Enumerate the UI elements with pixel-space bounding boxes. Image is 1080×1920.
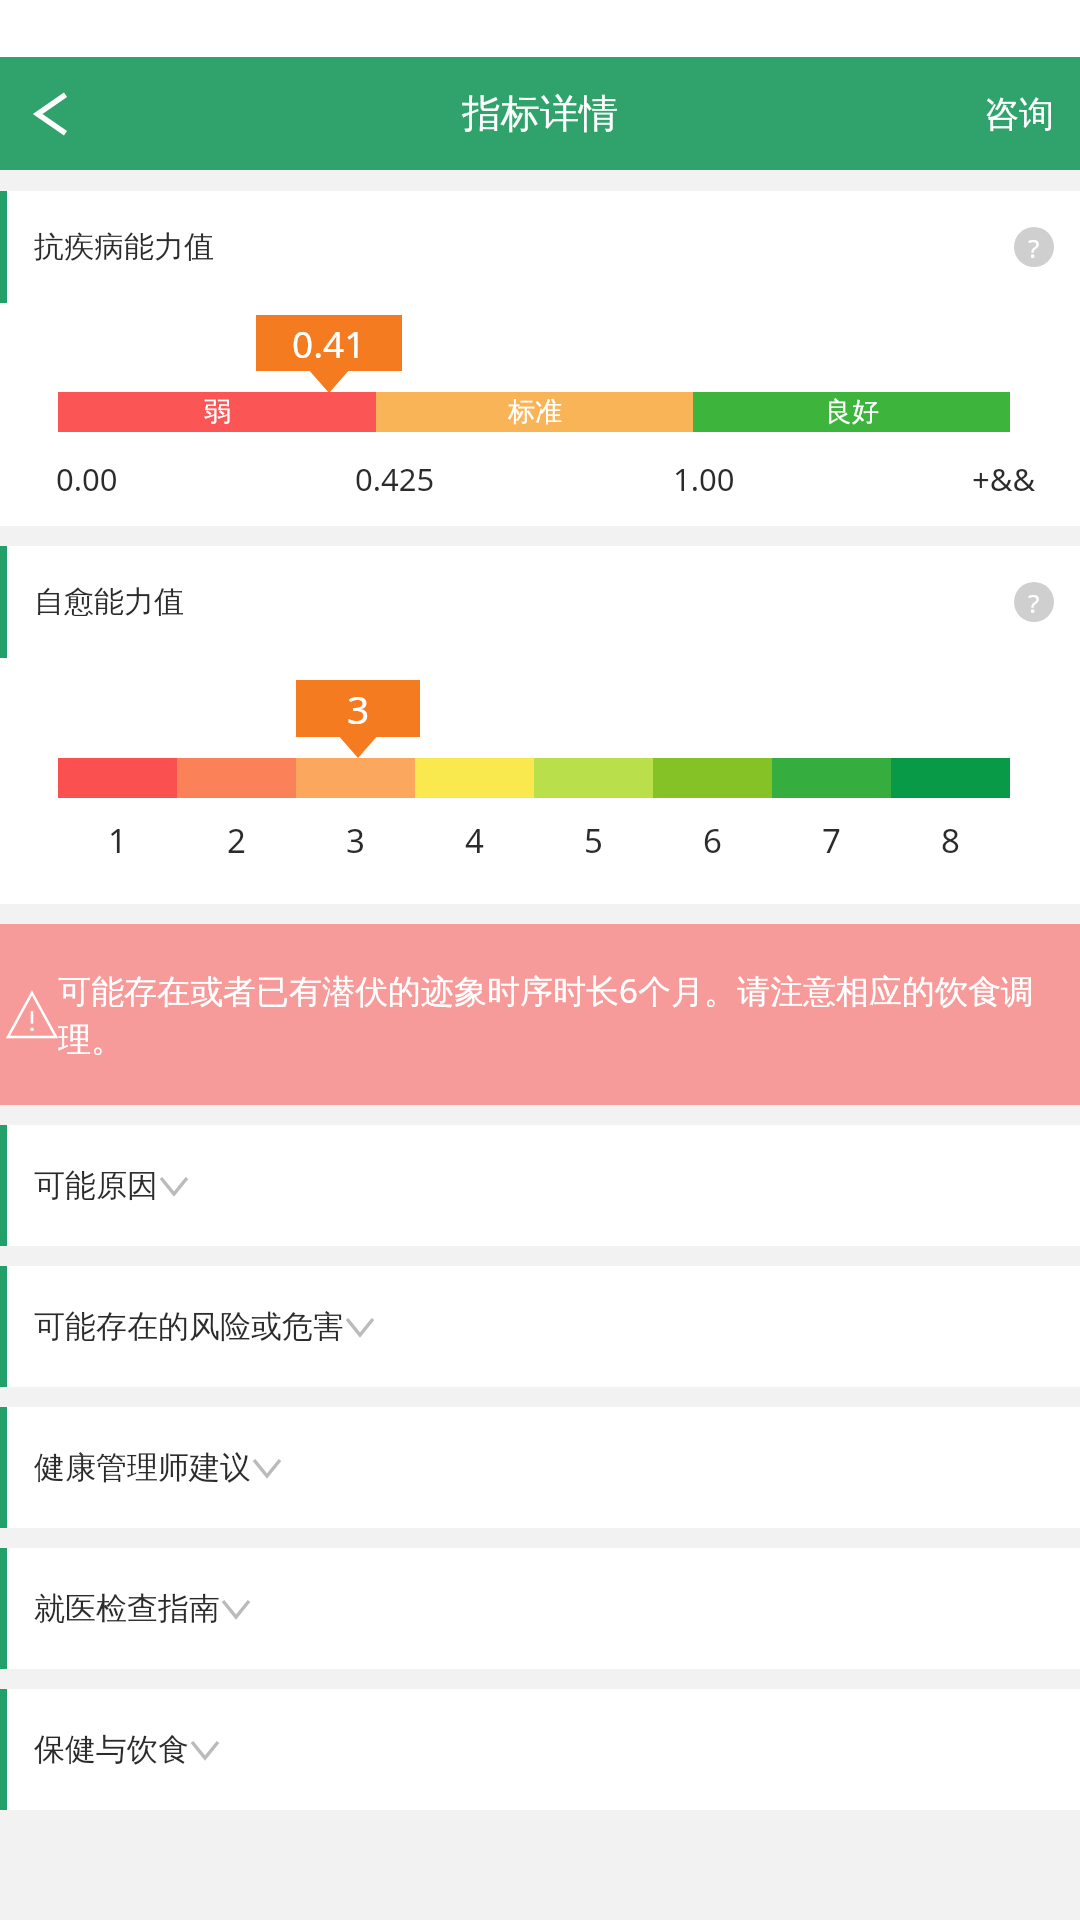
staticText: +&& xyxy=(972,458,1036,500)
staticText: 0.00 xyxy=(56,458,118,500)
button[interactable]: 可能原因 xyxy=(0,1125,1080,1246)
staticText: 咨询 xyxy=(984,92,1054,136)
staticText: 6 xyxy=(703,818,722,863)
staticText: 可能存在或者已有潜伏的迹象时序时长6个月。请注意相应的饮食调理。 xyxy=(58,968,1078,1061)
staticText: ? xyxy=(1028,585,1040,620)
staticText: 指标详情 xyxy=(462,89,618,138)
staticText: 3 xyxy=(346,818,365,863)
staticText: ? xyxy=(1028,230,1040,265)
staticText: 7 xyxy=(822,818,841,863)
button[interactable]: 自愈能力值 xyxy=(0,546,1080,658)
staticText: 良好 xyxy=(825,395,879,429)
staticText: 3 xyxy=(347,682,370,735)
staticText: 抗疾病能力值 xyxy=(34,228,214,266)
button[interactable]: 可能存在或者已有潜伏的迹象时序时长6个月。请注意相应的饮食调理。 xyxy=(0,924,1080,1105)
staticText: 4 xyxy=(465,818,484,863)
staticText: 标准 xyxy=(508,395,562,429)
staticText: 可能存在的风险或危害 xyxy=(34,1307,344,1346)
staticText: 保健与饮食 xyxy=(34,1730,189,1769)
staticText: 0.41 xyxy=(292,318,366,368)
button[interactable]: 抗疾病能力值 xyxy=(0,191,1080,303)
staticText: 8 xyxy=(941,818,960,863)
staticText: 1 xyxy=(108,818,127,863)
staticText: 2 xyxy=(227,818,246,863)
staticText: 0.425 xyxy=(355,458,435,500)
button[interactable]: Help xyxy=(1014,227,1054,267)
staticText: 1.00 xyxy=(673,458,735,500)
button[interactable]: 可能存在的风险或危害 xyxy=(0,1266,1080,1387)
button[interactable]: 保健与饮食 xyxy=(0,1689,1080,1810)
staticText: 可能原因 xyxy=(34,1166,158,1205)
staticText: 弱 xyxy=(204,395,231,429)
button[interactable]: Help xyxy=(1014,582,1054,622)
staticText: 健康管理师建议 xyxy=(34,1448,251,1487)
staticText: 就医检查指南 xyxy=(34,1589,220,1628)
staticText: 自愈能力值 xyxy=(34,583,184,621)
button[interactable]: 咨询 xyxy=(958,57,1080,170)
button[interactable]: Back xyxy=(12,72,96,156)
staticText: 5 xyxy=(584,818,603,863)
button[interactable]: 健康管理师建议 xyxy=(0,1407,1080,1528)
button[interactable]: 就医检查指南 xyxy=(0,1548,1080,1669)
